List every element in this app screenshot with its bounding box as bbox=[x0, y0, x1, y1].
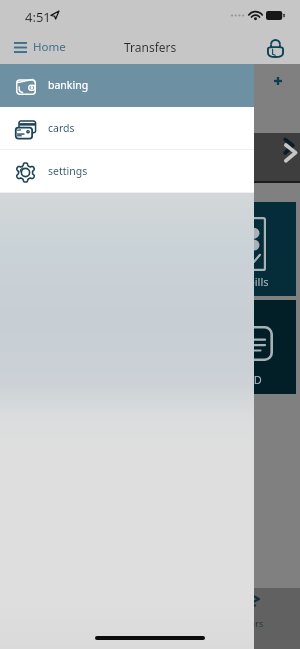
staticText: Top up ID bbox=[212, 372, 262, 387]
button[interactable]: Add bbox=[274, 77, 282, 85]
staticText: cards bbox=[48, 121, 75, 135]
staticText: banking bbox=[48, 78, 89, 92]
staticText: Transfers bbox=[224, 617, 264, 629]
staticText: bills bbox=[248, 274, 269, 289]
staticText: settings bbox=[48, 164, 88, 178]
staticText: Transfers bbox=[124, 39, 177, 55]
button[interactable]: bills bbox=[0, 202, 296, 296]
staticText: 4:51 bbox=[25, 8, 51, 26]
button[interactable]: Home bbox=[14, 32, 66, 62]
button[interactable]: Top up ID bbox=[0, 300, 296, 394]
button[interactable]: Lock bbox=[263, 34, 287, 60]
button[interactable]: banking bbox=[0, 64, 254, 107]
staticText: Home bbox=[33, 39, 66, 55]
button[interactable]: settings bbox=[0, 150, 254, 193]
button[interactable]: cards bbox=[0, 107, 254, 150]
button[interactable]: Transfers bbox=[224, 592, 266, 636]
